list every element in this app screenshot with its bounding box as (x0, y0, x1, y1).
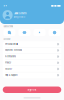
staticText: Jane Smith (14, 12, 26, 15)
button[interactable]: gearshape (49, 29, 61, 36)
staticText: 9:41 (3, 5, 7, 7)
staticText: Security (5, 68, 12, 70)
staticText: Notifications (5, 55, 16, 58)
staticText: Sign Out (27, 88, 36, 91)
button[interactable]: creditcard (18, 29, 30, 36)
button[interactable]: Notifications (3, 54, 61, 59)
button[interactable]: bell.fill (33, 29, 46, 36)
staticText: ACCOUNT (3, 38, 10, 40)
staticText: Help & Support (5, 74, 18, 76)
staticText: Payment methods (5, 49, 22, 52)
button[interactable]: doc.text.magnifyingglass (3, 29, 15, 36)
staticText: Personal details (5, 43, 18, 45)
button[interactable]: Privacy (3, 60, 61, 66)
button[interactable]: Sign Out (3, 86, 61, 93)
button[interactable]: Security (3, 66, 61, 72)
staticText: Privacy (5, 62, 11, 64)
button[interactable]: Help & Support (3, 72, 61, 78)
staticText: QUICK ACTIONS (3, 26, 13, 28)
button[interactable]: Payment methods (3, 47, 61, 53)
button[interactable]: Personal details (3, 41, 61, 47)
staticText: jane@mail.co (14, 16, 25, 18)
